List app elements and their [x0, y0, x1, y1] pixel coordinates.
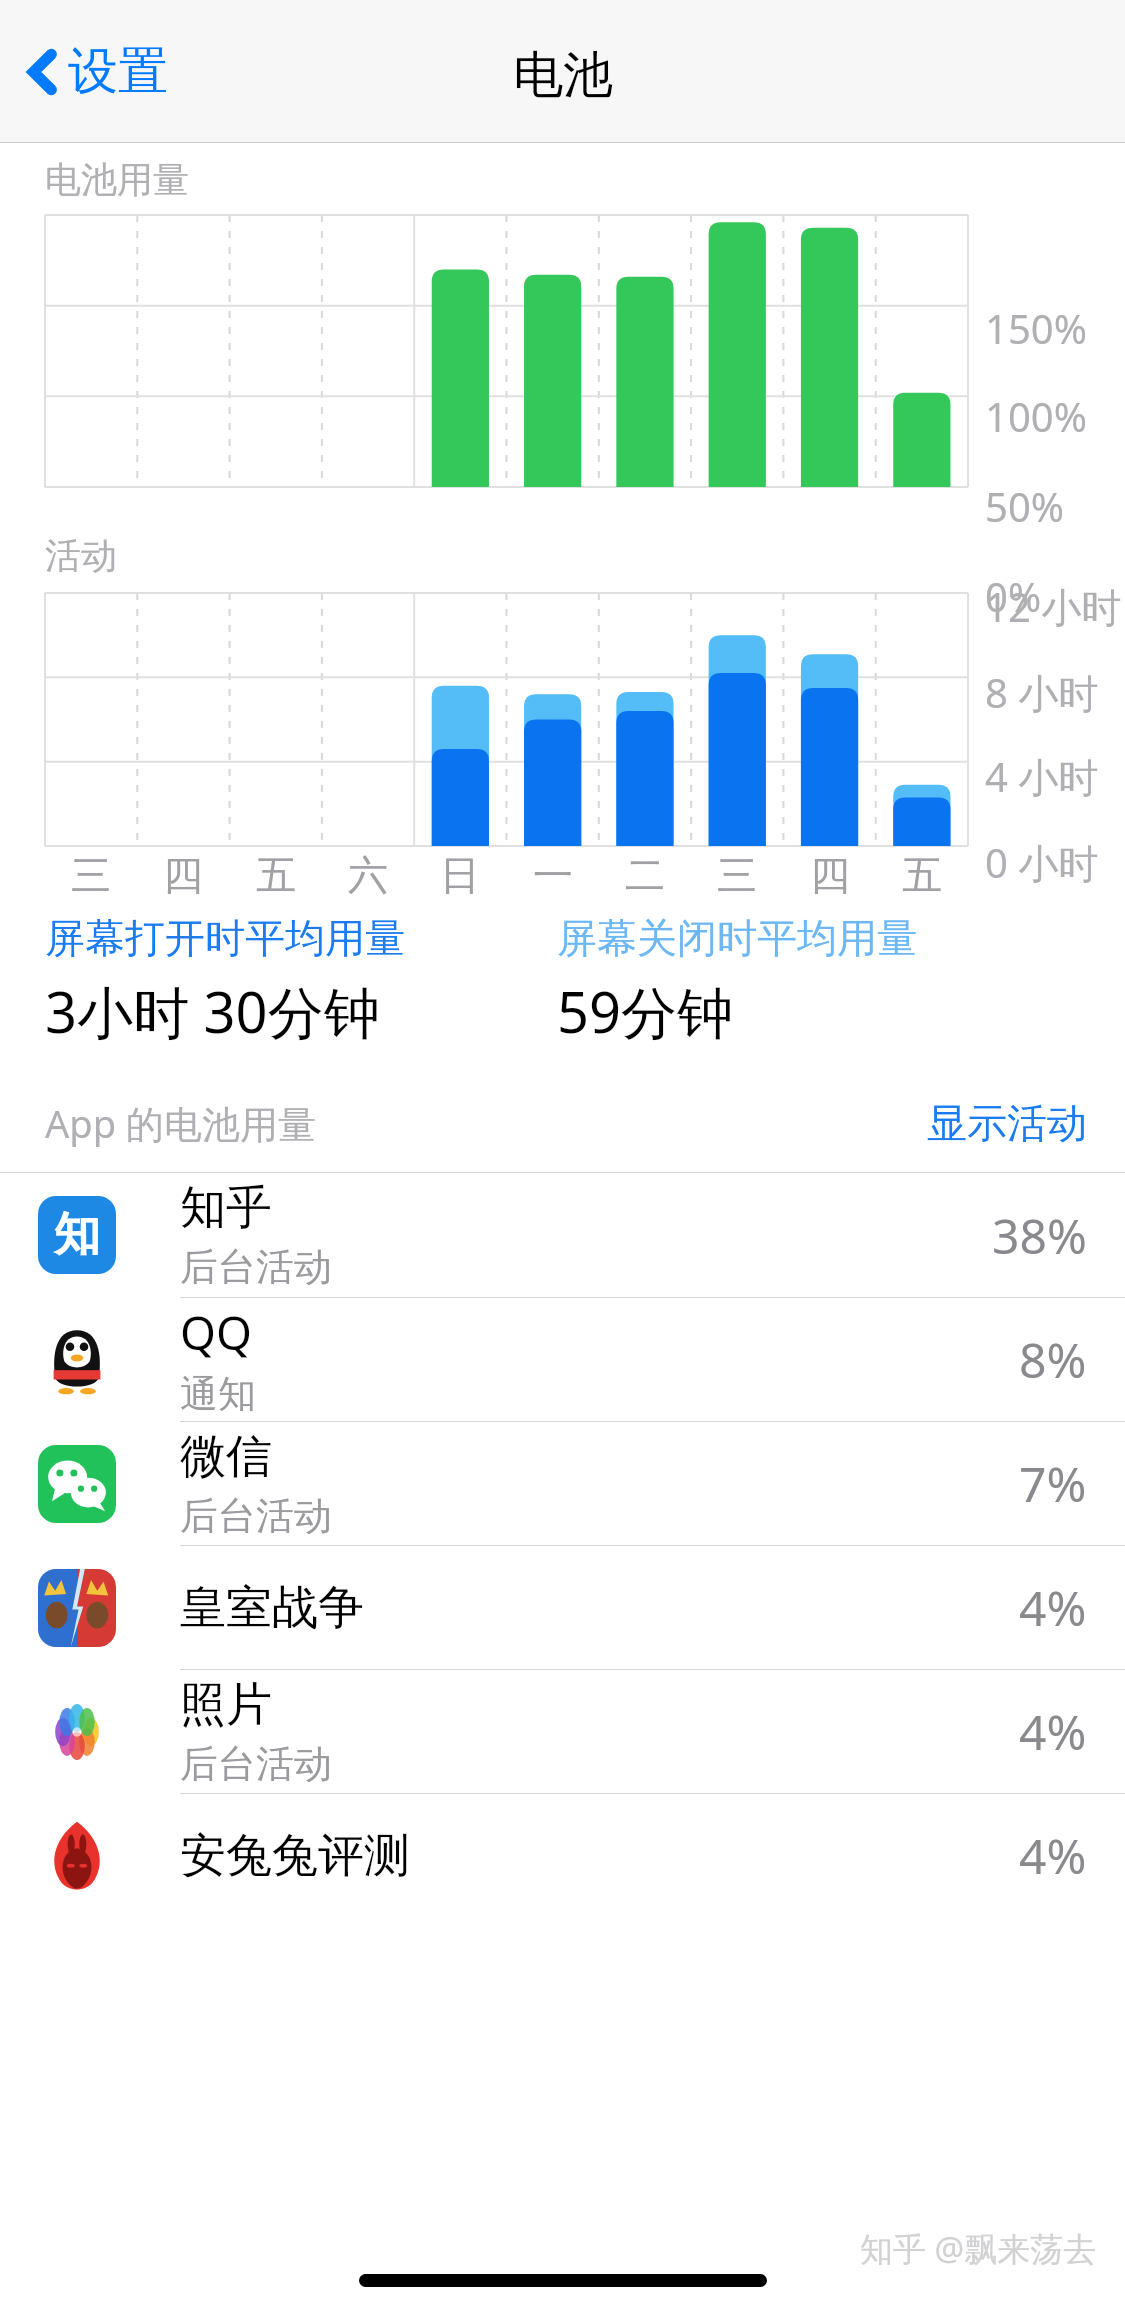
staticText: 屏幕打开时平均用量 [45, 913, 405, 963]
staticText: 一 [528, 850, 578, 900]
staticText: 屏幕关闭时平均用量 [557, 913, 917, 963]
staticText: 照片 [180, 1676, 272, 1734]
staticText: 后台活动 [180, 1243, 332, 1291]
staticText: 日 [435, 850, 485, 900]
staticText: 0 小时 [985, 835, 1099, 890]
button[interactable]: 屏幕打开时平均用量 [45, 913, 405, 1049]
staticText: 0% [985, 569, 1042, 623]
staticText: 五 [897, 850, 947, 900]
staticText: 11月15日 [414, 908, 577, 960]
button[interactable]: 设置 [22, 32, 174, 111]
staticText: 11月11日 [45, 908, 208, 960]
staticText: 4 小时 [985, 749, 1099, 804]
staticText: 四 [158, 850, 208, 900]
staticText: 安兔兔评测 [180, 1827, 410, 1885]
staticText: 活动 [45, 533, 117, 578]
staticText: 显示活动 [927, 1098, 1087, 1148]
staticText: 100% [985, 389, 1087, 443]
staticText: 三 [66, 850, 116, 900]
staticText: 8% [1019, 1327, 1087, 1392]
staticText: 后台活动 [180, 1492, 332, 1540]
staticText: 38% [992, 1203, 1087, 1268]
staticText: 8 小时 [985, 665, 1099, 720]
button[interactable]: 知 [0, 1173, 1125, 1297]
staticText: 59分钟 [557, 973, 734, 1049]
staticText: 50% [985, 479, 1064, 533]
staticText: QQ [180, 1301, 252, 1364]
button[interactable]: 安兔兔评测 [0, 1793, 1125, 1917]
staticText: 三 [712, 850, 762, 900]
staticText: 知乎 @飘来荡去 [860, 2226, 1097, 2271]
staticText: 4% [1019, 1575, 1087, 1640]
staticText: 7% [1019, 1451, 1087, 1516]
staticText: 4% [1019, 1699, 1087, 1764]
staticText: 四 [805, 850, 855, 900]
staticText: 皇室战争 [180, 1579, 364, 1637]
button[interactable]: 照片 [0, 1669, 1125, 1793]
staticText: 设置 [68, 40, 168, 103]
staticText: 150% [985, 301, 1087, 355]
staticText: 后台活动 [180, 1740, 332, 1788]
staticText: 电池 [513, 44, 613, 107]
staticText: 通知 [180, 1370, 256, 1418]
button[interactable]: QQ [0, 1297, 1125, 1421]
staticText: App 的电池用量 [45, 1097, 316, 1149]
staticText: 3小时 30分钟 [45, 973, 380, 1049]
staticText: 知乎 [180, 1179, 272, 1237]
button[interactable]: 显示活动 [923, 1094, 1091, 1152]
staticText: 电池用量 [45, 157, 189, 202]
staticText: 微信 [180, 1428, 272, 1486]
staticText: 4% [1019, 1823, 1087, 1888]
staticText: 五 [251, 850, 301, 900]
button[interactable]: 皇室战争 [0, 1545, 1125, 1669]
staticText: 知 [54, 1206, 100, 1264]
button[interactable]: 屏幕关闭时平均用量 [557, 913, 917, 1049]
staticText: 六 [343, 850, 393, 900]
button[interactable]: 微信 [0, 1421, 1125, 1545]
staticText: 12 小时 [985, 579, 1122, 634]
staticText: 二 [620, 850, 670, 900]
